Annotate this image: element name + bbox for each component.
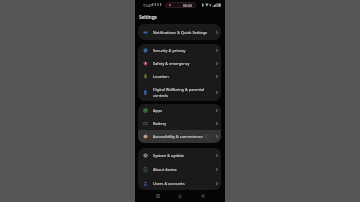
staticText: Notifications & Quick Settings <box>153 30 216 35</box>
button[interactable]: About device <box>138 162 221 176</box>
button[interactable]: Apps <box>138 104 221 117</box>
staticText: About device <box>153 167 216 172</box>
staticText: Settings <box>139 14 157 20</box>
button[interactable]: Safety & emergency <box>138 57 221 70</box>
button[interactable]: System & update <box>138 148 221 162</box>
staticText: Apps <box>153 108 216 113</box>
button[interactable]: Back <box>194 188 210 202</box>
staticText: Battery <box>153 121 216 126</box>
staticText: System & update <box>153 153 216 158</box>
staticText: Safety & emergency <box>153 61 216 66</box>
staticText: Digital Wellbeing & parental controls <box>153 87 216 98</box>
staticText: 11:47 <box>143 3 152 8</box>
staticText: 00:04 <box>183 3 192 8</box>
staticText: Security & privacy <box>153 48 216 53</box>
button[interactable]: Recent apps <box>150 188 166 202</box>
button[interactable]: Home <box>172 188 188 202</box>
button[interactable]: Location <box>138 70 221 83</box>
button[interactable]: Security & privacy <box>138 44 221 57</box>
button[interactable]: Notifications & Quick Settings <box>138 24 221 40</box>
staticText: Users & accounts <box>153 181 216 186</box>
staticText: Location <box>153 74 216 79</box>
button[interactable]: Digital Wellbeing & parental controls <box>138 83 221 101</box>
button[interactable]: Users & accounts <box>138 176 221 190</box>
button[interactable]: Accessibility & convenience <box>138 130 221 143</box>
staticText: Accessibility & convenience <box>153 134 216 139</box>
button[interactable]: Battery <box>138 117 221 130</box>
